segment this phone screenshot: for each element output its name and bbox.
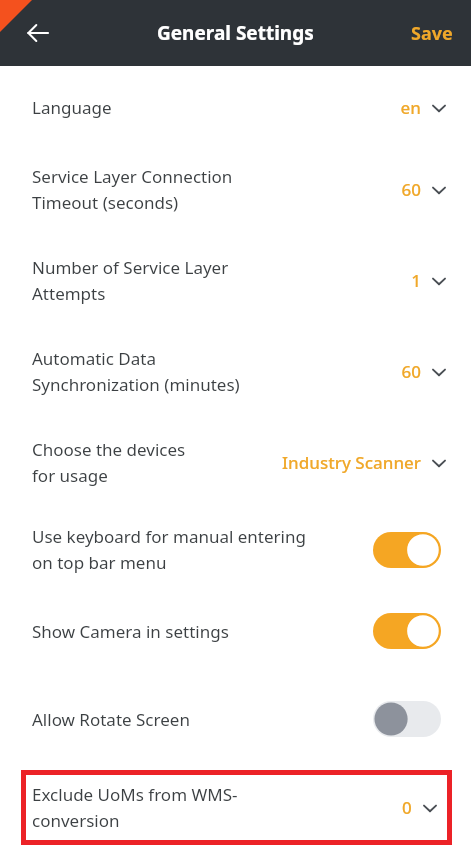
staticText: Automatic Data Synchronization (minutes) (32, 347, 332, 396)
button[interactable]: Use keyboard for manual entering on top … (0, 517, 471, 582)
staticText: Service Layer Connection Timeout (second… (32, 165, 332, 214)
staticText: 1 (411, 269, 421, 292)
staticText: Use keyboard for manual entering on top … (32, 525, 363, 574)
button[interactable]: Back (14, 9, 62, 57)
button[interactable]: Save (393, 11, 471, 56)
button[interactable]: Automatic Data Synchronization (minutes) (0, 337, 471, 406)
button[interactable]: Service Layer Connection Timeout (second… (0, 155, 471, 224)
staticText: General Settings (157, 20, 314, 46)
staticText: Show Camera in settings (32, 620, 363, 643)
staticText: Choose the devices for usage (32, 438, 242, 487)
button[interactable]: Choose the devices for usage (0, 428, 471, 497)
button[interactable]: Off (373, 700, 441, 738)
button[interactable]: Exclude UoMs from WMS- conversion (21, 770, 452, 845)
staticText: Language (32, 96, 332, 119)
staticText: Allow Rotate Screen (32, 708, 363, 731)
staticText: 0 (402, 796, 412, 819)
button[interactable]: On (373, 612, 441, 650)
button[interactable]: On (373, 531, 441, 569)
button[interactable]: Language (0, 86, 471, 129)
button[interactable]: Show Camera in settings (0, 604, 471, 658)
button[interactable]: Number of Service Layer Attempts (0, 246, 471, 315)
staticText: en (400, 96, 421, 119)
staticText: Save (411, 21, 453, 46)
staticText: Exclude UoMs from WMS- conversion (32, 783, 332, 832)
staticText: 60 (401, 360, 421, 383)
staticText: 60 (401, 178, 421, 201)
staticText: Industry Scanner (282, 451, 421, 474)
button[interactable]: Allow Rotate Screen (0, 692, 471, 746)
staticText: Number of Service Layer Attempts (32, 256, 332, 305)
